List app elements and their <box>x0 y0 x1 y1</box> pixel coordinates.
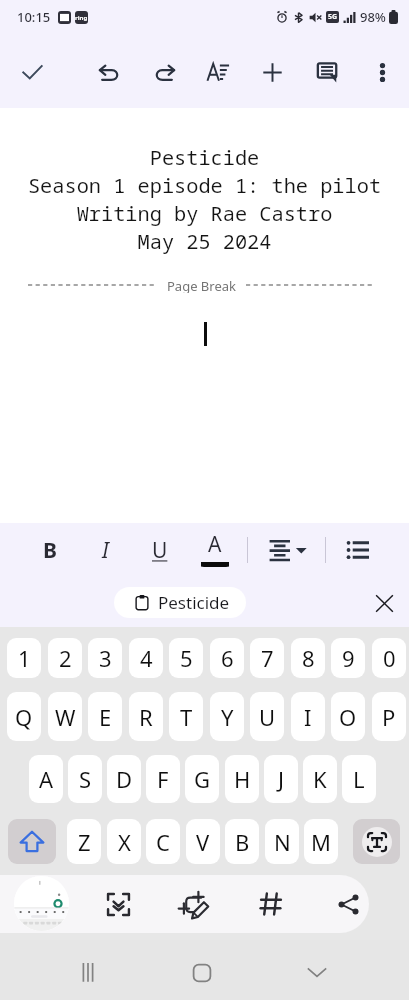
staticText: 4 <box>140 643 153 673</box>
staticText: Z <box>78 827 91 857</box>
button[interactable]: Shift <box>8 819 56 864</box>
button[interactable]: Scan text <box>353 819 400 864</box>
button[interactable]: Done <box>11 51 53 93</box>
button[interactable]: K <box>303 755 337 803</box>
button[interactable]: 8 <box>291 638 325 678</box>
button[interactable]: Recents <box>62 946 114 998</box>
button[interactable]: Bold <box>31 531 69 569</box>
button[interactable]: Underline <box>141 531 179 569</box>
button[interactable]: R <box>129 692 163 741</box>
button[interactable]: M <box>304 819 338 864</box>
button[interactable]: Extract text <box>97 883 139 925</box>
button[interactable]: U <box>250 692 284 741</box>
button[interactable]: A <box>29 755 63 803</box>
button[interactable]: W <box>48 692 82 741</box>
button[interactable]: B <box>225 819 259 864</box>
button[interactable]: Italic <box>86 531 124 569</box>
button[interactable]: 2 <box>48 638 82 678</box>
button[interactable]: L <box>342 755 376 803</box>
staticText: J <box>278 764 285 794</box>
button[interactable]: F <box>146 755 180 803</box>
staticText: 7 <box>261 643 274 673</box>
staticText: Pesticide <box>0 143 409 171</box>
staticText: 3 <box>99 643 112 673</box>
staticText: E <box>99 702 112 732</box>
button[interactable]: 1 <box>7 638 41 678</box>
button[interactable]: D <box>107 755 141 803</box>
staticText: K <box>313 764 327 794</box>
button[interactable]: I <box>291 692 325 741</box>
button[interactable]: Write on sticker <box>174 883 216 925</box>
button[interactable]: O <box>331 692 365 741</box>
button[interactable]: 9 <box>331 638 365 678</box>
staticText: M <box>311 827 331 857</box>
staticText: B <box>235 827 250 857</box>
staticText: 98% <box>360 8 386 26</box>
staticText: 2 <box>59 643 72 673</box>
staticText: Season 1 episode 1: the pilot <box>0 171 409 199</box>
button[interactable]: 0 <box>372 638 406 678</box>
button[interactable]: Text formatting <box>197 51 239 93</box>
button[interactable]: C <box>146 819 180 864</box>
button[interactable]: 6 <box>210 638 244 678</box>
button[interactable]: Pesticide <box>114 587 246 618</box>
button[interactable]: Share <box>327 883 369 925</box>
button[interactable]: Undo <box>88 51 130 93</box>
staticText: Y <box>221 702 234 732</box>
button[interactable]: List <box>338 530 378 570</box>
button[interactable]: Comment <box>306 51 348 93</box>
staticText: 0 <box>383 643 396 673</box>
button[interactable]: 3 <box>88 638 122 678</box>
button[interactable]: X <box>107 819 141 864</box>
button[interactable]: P <box>372 692 406 741</box>
button[interactable]: Z <box>67 819 101 864</box>
button[interactable]: Y <box>210 692 244 741</box>
staticText: U <box>152 536 168 565</box>
button[interactable]: Home <box>176 946 228 998</box>
staticText: L <box>353 764 365 794</box>
button[interactable]: E <box>88 692 122 741</box>
button[interactable]: T <box>169 692 203 741</box>
staticText: O <box>339 702 357 732</box>
staticText: Writing by Rae Castro <box>0 199 409 227</box>
button[interactable]: Hide keyboard <box>291 946 343 998</box>
button[interactable]: 4 <box>129 638 163 678</box>
staticText: 5 <box>180 643 193 673</box>
staticText: I <box>304 702 312 732</box>
staticText: P <box>382 702 396 732</box>
button[interactable]: G <box>185 755 219 803</box>
button[interactable]: Text colour <box>196 529 234 567</box>
staticText: 9 <box>342 643 355 673</box>
staticText: G <box>194 764 211 794</box>
staticText: 8 <box>302 643 315 673</box>
button[interactable]: Q <box>7 692 41 741</box>
button[interactable]: 7 <box>250 638 284 678</box>
button[interactable]: N <box>265 819 299 864</box>
button[interactable]: Alignment <box>263 530 312 570</box>
button[interactable]: Insert <box>251 51 293 93</box>
button[interactable]: Redo <box>143 51 185 93</box>
staticText: Q <box>15 702 33 732</box>
button[interactable]: J <box>264 755 298 803</box>
button[interactable]: V <box>186 819 220 864</box>
staticText: ring <box>75 14 88 22</box>
staticText: 6 <box>221 643 234 673</box>
button[interactable]: 5 <box>169 638 203 678</box>
staticText: 5G <box>328 12 338 22</box>
staticText: Pesticide <box>158 591 230 614</box>
button[interactable]: H <box>225 755 259 803</box>
button[interactable]: More options <box>361 51 403 93</box>
staticText: H <box>234 764 251 794</box>
button[interactable]: S <box>68 755 102 803</box>
staticText: A <box>208 530 222 559</box>
button[interactable]: Close <box>366 585 402 621</box>
button[interactable]: Keyboard preview <box>14 876 69 931</box>
staticText: R <box>139 702 153 732</box>
staticText: V <box>196 827 210 857</box>
staticText: I <box>102 536 109 565</box>
staticText: F <box>157 764 169 794</box>
staticText: T <box>180 702 193 732</box>
staticText: B <box>43 536 57 565</box>
staticText: U <box>259 702 276 732</box>
button[interactable]: Hashtag <box>250 883 292 925</box>
